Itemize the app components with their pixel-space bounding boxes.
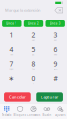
- button[interactable]: Línea 1: [2, 20, 21, 27]
- staticText: +: [33, 83, 34, 85]
- staticText: Capturar: [41, 94, 59, 100]
- button[interactable]: 4: [1, 43, 22, 57]
- staticText: WXYZ: [53, 68, 57, 70]
- staticText: Marque la extensión: [5, 8, 40, 13]
- staticText: MNO: [54, 54, 57, 56]
- staticText: TUV: [32, 68, 35, 70]
- button[interactable]: 6: [45, 43, 66, 57]
- button[interactable]: 9: [45, 58, 66, 72]
- button[interactable]: 1: [1, 29, 22, 43]
- button[interactable]: Teclado: [0, 105, 13, 117]
- button[interactable]: Cancelar: [4, 92, 31, 102]
- staticText: Cancelar: [9, 94, 26, 100]
- button[interactable]: #: [45, 72, 66, 86]
- staticText: Bloqueo: [14, 113, 27, 117]
- button[interactable]: ∗: [1, 72, 22, 86]
- staticText: 1: [9, 30, 13, 39]
- staticText: PQRS: [9, 68, 13, 70]
- staticText: 3: [53, 30, 57, 39]
- button[interactable]: Contactos: [27, 105, 40, 117]
- staticText: DEF: [54, 39, 57, 41]
- staticText: JKL: [32, 54, 34, 56]
- staticText: Teclado: [2, 113, 12, 117]
- staticText: 4: [9, 45, 13, 54]
- button[interactable]: Capturar: [36, 92, 63, 102]
- button[interactable]: Bloqueo: [13, 105, 27, 117]
- staticText: 8: [31, 59, 35, 68]
- button[interactable]: 5: [23, 43, 44, 57]
- staticText: 7: [9, 59, 13, 68]
- staticText: 0: [31, 74, 35, 83]
- staticText: Línea 3: [50, 22, 61, 25]
- staticText: 2: [31, 30, 35, 39]
- staticText: ∗: [8, 75, 14, 82]
- staticText: Línea 1: [6, 22, 17, 25]
- button[interactable]: 3: [45, 29, 66, 43]
- staticText: GHI: [10, 54, 12, 56]
- staticText: Buzón: [42, 113, 51, 117]
- staticText: Contactos: [27, 113, 40, 117]
- button[interactable]: 7: [1, 58, 22, 72]
- button[interactable]: 2: [23, 29, 44, 43]
- button[interactable]: 0: [23, 72, 44, 86]
- button[interactable]: Buzón: [40, 105, 54, 117]
- staticText: 6: [53, 45, 57, 54]
- staticText: ABC: [32, 39, 35, 41]
- staticText: 5: [31, 45, 35, 54]
- button[interactable]: Borrar: [53, 7, 64, 13]
- staticText: Línea 2: [28, 22, 39, 25]
- button[interactable]: Ajustes: [54, 105, 67, 117]
- staticText: #: [53, 74, 57, 83]
- button[interactable]: 8: [23, 58, 44, 72]
- staticText: 9: [53, 59, 57, 68]
- staticText: Ajustes: [55, 113, 65, 117]
- button[interactable]: Línea 3: [45, 20, 65, 27]
- button[interactable]: Línea 2: [24, 20, 43, 27]
